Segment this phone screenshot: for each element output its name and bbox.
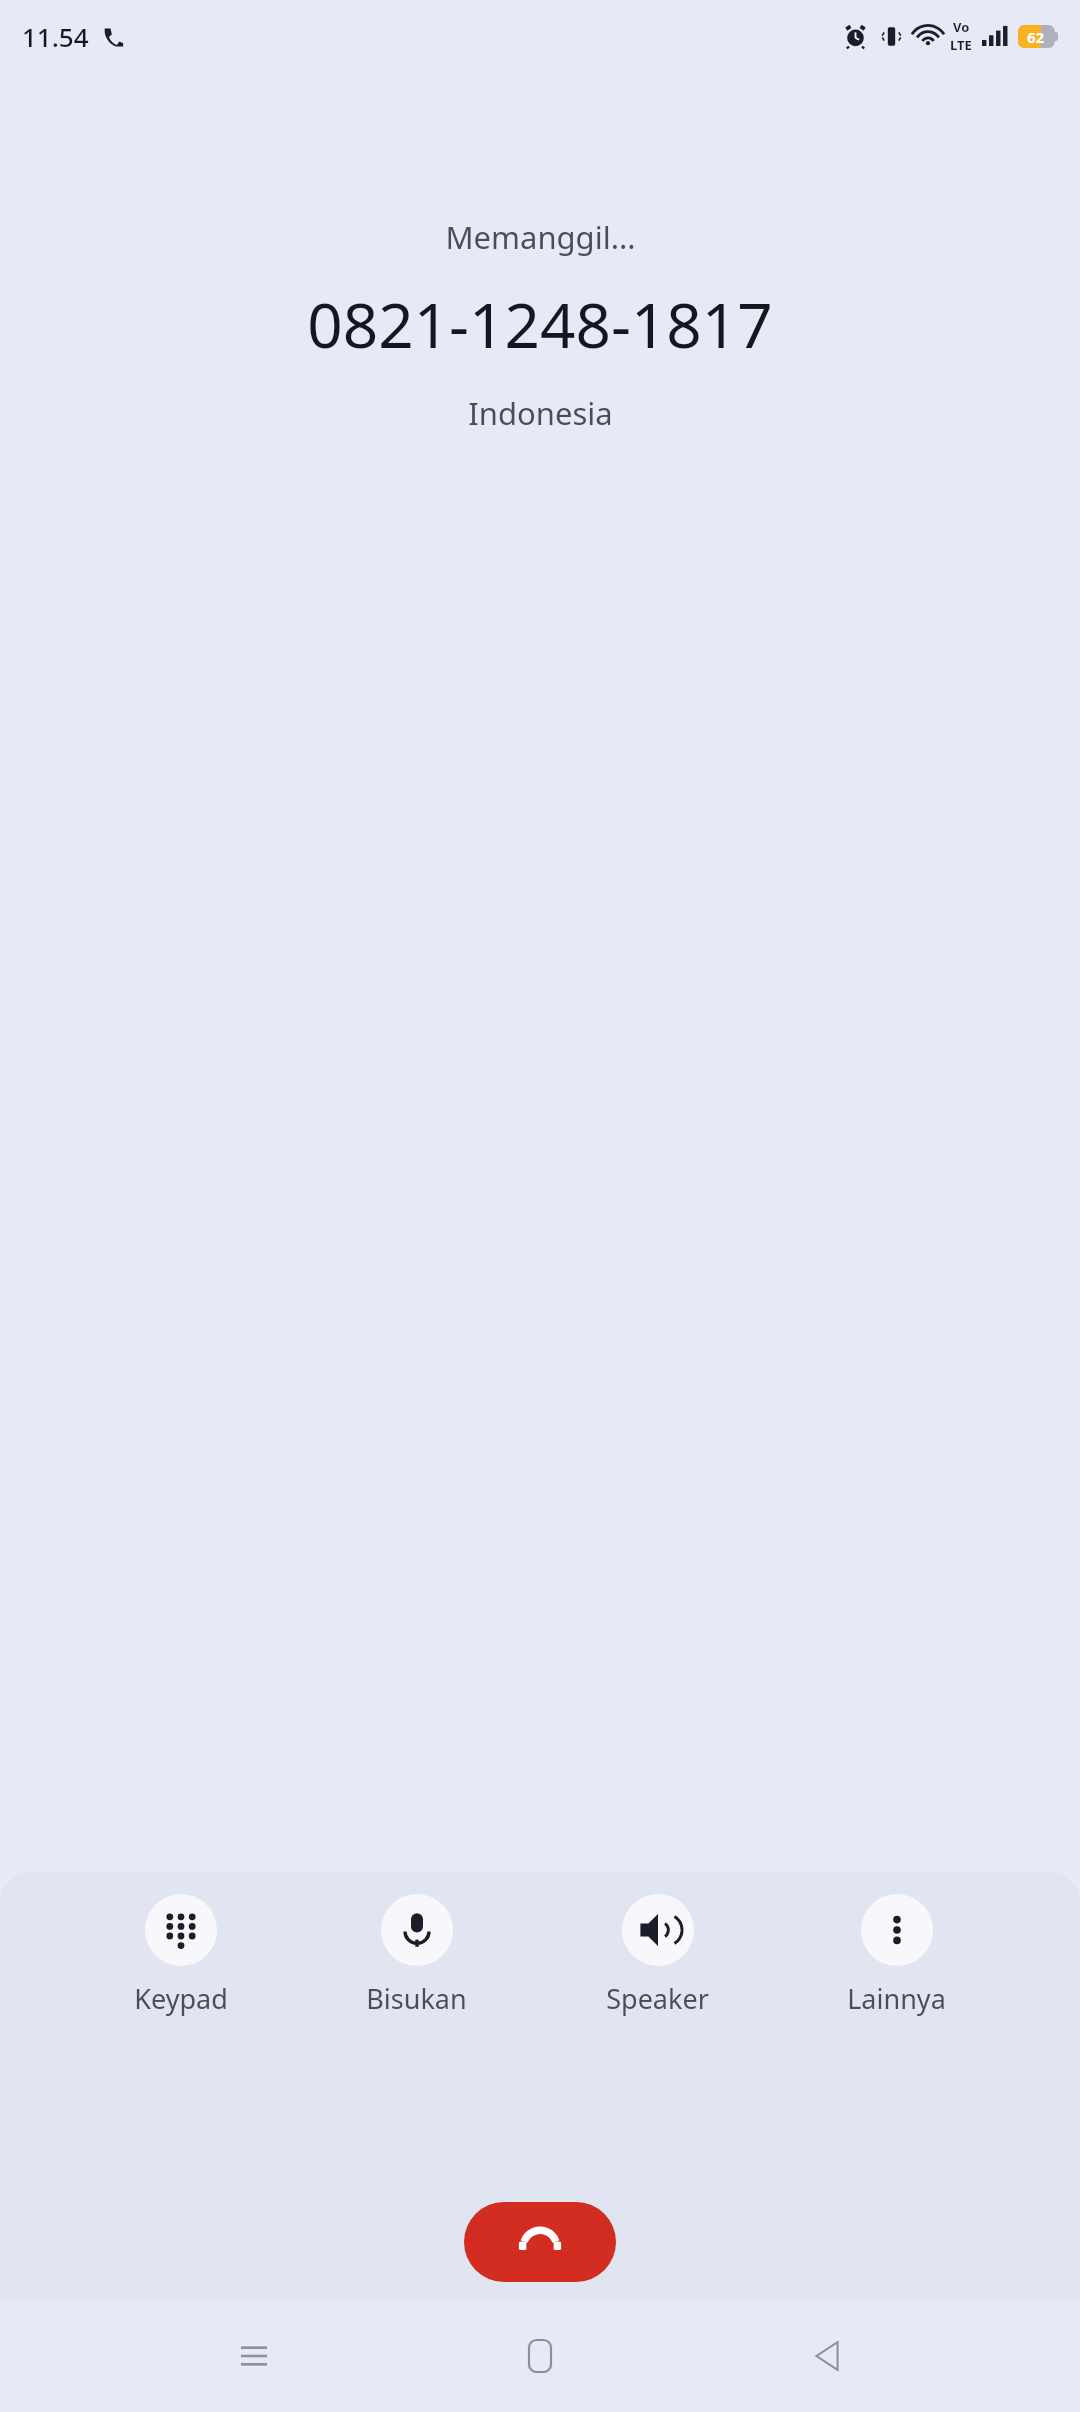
staticText: 62 bbox=[1027, 27, 1045, 47]
button[interactable]: End call bbox=[464, 2202, 616, 2282]
staticText: Keypad bbox=[134, 1980, 228, 2017]
staticText: Indonesia bbox=[468, 392, 613, 434]
button[interactable]: Bisukan bbox=[362, 1894, 471, 2017]
staticText: Memanggil... bbox=[445, 216, 636, 258]
button[interactable]: Back bbox=[794, 2323, 860, 2389]
staticText: Bisukan bbox=[366, 1980, 467, 2017]
button[interactable]: Lainnya bbox=[843, 1894, 950, 2017]
staticText: Lainnya bbox=[847, 1980, 946, 2017]
staticText: Vo bbox=[953, 18, 970, 36]
staticText: 11.54 bbox=[22, 19, 89, 54]
staticText: LTE bbox=[950, 36, 972, 54]
button[interactable]: Keypad bbox=[130, 1894, 232, 2017]
button[interactable]: Recents bbox=[221, 2323, 287, 2389]
staticText: Speaker bbox=[606, 1980, 709, 2017]
button[interactable]: Speaker bbox=[602, 1894, 713, 2017]
button[interactable]: Home bbox=[507, 2323, 573, 2389]
staticText: 0821-1248-1817 bbox=[307, 282, 773, 366]
